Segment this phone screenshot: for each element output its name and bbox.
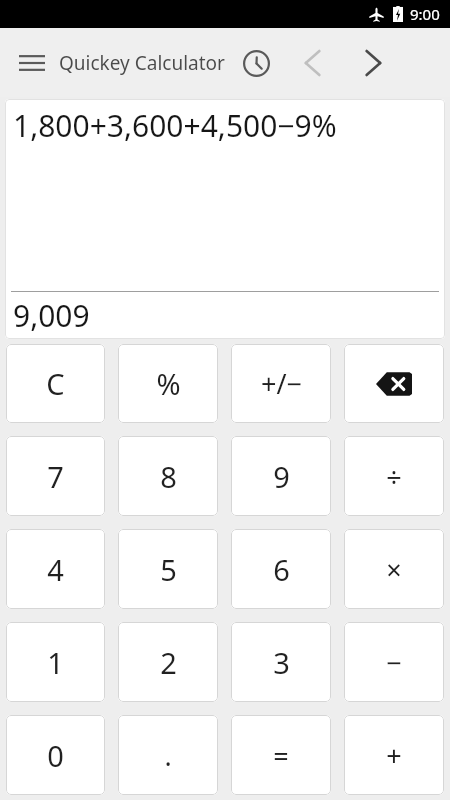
staticText: 7 <box>47 457 64 496</box>
button[interactable]: × <box>344 529 444 609</box>
button[interactable]: 6 <box>231 529 331 609</box>
staticText: C <box>46 364 65 403</box>
button[interactable]: Previous <box>291 41 335 85</box>
staticText: % <box>156 364 181 403</box>
staticText: . <box>164 737 172 774</box>
button[interactable]: . <box>118 715 218 795</box>
staticText: × <box>386 551 402 588</box>
button[interactable]: 7 <box>6 436 105 516</box>
staticText: +/− <box>261 365 302 402</box>
staticText: 1 <box>47 643 64 682</box>
button[interactable]: 2 <box>118 622 218 702</box>
button[interactable]: ÷ <box>344 436 444 516</box>
button[interactable]: 0 <box>6 715 105 795</box>
staticText: 9:00 <box>410 4 440 24</box>
button[interactable]: +/− <box>231 344 331 423</box>
staticText: + <box>386 737 402 774</box>
staticText: 4 <box>47 550 64 589</box>
staticText: 2 <box>160 643 177 682</box>
button[interactable]: 5 <box>118 529 218 609</box>
staticText: − <box>386 644 402 681</box>
button[interactable]: 1,800+3,600+4,500−9% <box>5 99 445 339</box>
button[interactable]: + <box>344 715 444 795</box>
button[interactable]: − <box>344 622 444 702</box>
button[interactable]: 4 <box>6 529 105 609</box>
staticText: 0 <box>47 736 64 775</box>
button[interactable]: 8 <box>118 436 218 516</box>
staticText: 3 <box>273 643 290 682</box>
button[interactable]: 9 <box>231 436 331 516</box>
staticText: 5 <box>160 550 177 589</box>
staticText: ÷ <box>386 458 402 495</box>
button[interactable]: Next <box>351 41 395 85</box>
button[interactable]: Menu <box>10 41 54 85</box>
staticText: = <box>273 737 289 774</box>
button[interactable]: 3 <box>231 622 331 702</box>
button[interactable]: History <box>235 42 277 84</box>
staticText: 9,009 <box>13 295 90 336</box>
staticText: 9 <box>273 457 290 496</box>
staticText: Quickey Calculator <box>59 50 225 76</box>
button[interactable]: % <box>118 344 218 423</box>
button[interactable]: C <box>6 344 105 423</box>
button[interactable]: 1 <box>6 622 105 702</box>
button[interactable]: Backspace <box>344 344 444 423</box>
staticText: 1,800+3,600+4,500−9% <box>13 105 337 146</box>
staticText: 6 <box>273 550 290 589</box>
staticText: 8 <box>160 457 177 496</box>
button[interactable]: = <box>231 715 331 795</box>
